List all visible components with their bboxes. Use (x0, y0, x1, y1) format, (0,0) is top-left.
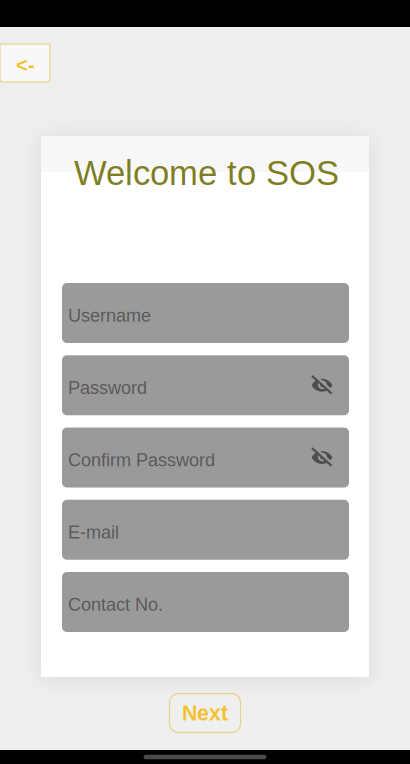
staticText: Next (182, 701, 228, 725)
staticText: <- (16, 54, 35, 76)
button[interactable]: Back (0, 44, 50, 82)
button[interactable]: E-mail (62, 500, 349, 560)
button[interactable]: Username (62, 283, 349, 343)
staticText: E-mail (68, 522, 119, 542)
button[interactable]: Contact No. (62, 572, 349, 632)
staticText: Contact No. (68, 594, 163, 615)
button[interactable]: Next (169, 693, 240, 732)
staticText: Username (68, 305, 151, 326)
button[interactable]: Password (62, 355, 349, 415)
button[interactable]: Confirm Password (62, 427, 349, 487)
staticText: Welcome to SOS (74, 154, 339, 192)
staticText: Confirm Password (68, 450, 215, 470)
staticText: Password (68, 378, 147, 398)
